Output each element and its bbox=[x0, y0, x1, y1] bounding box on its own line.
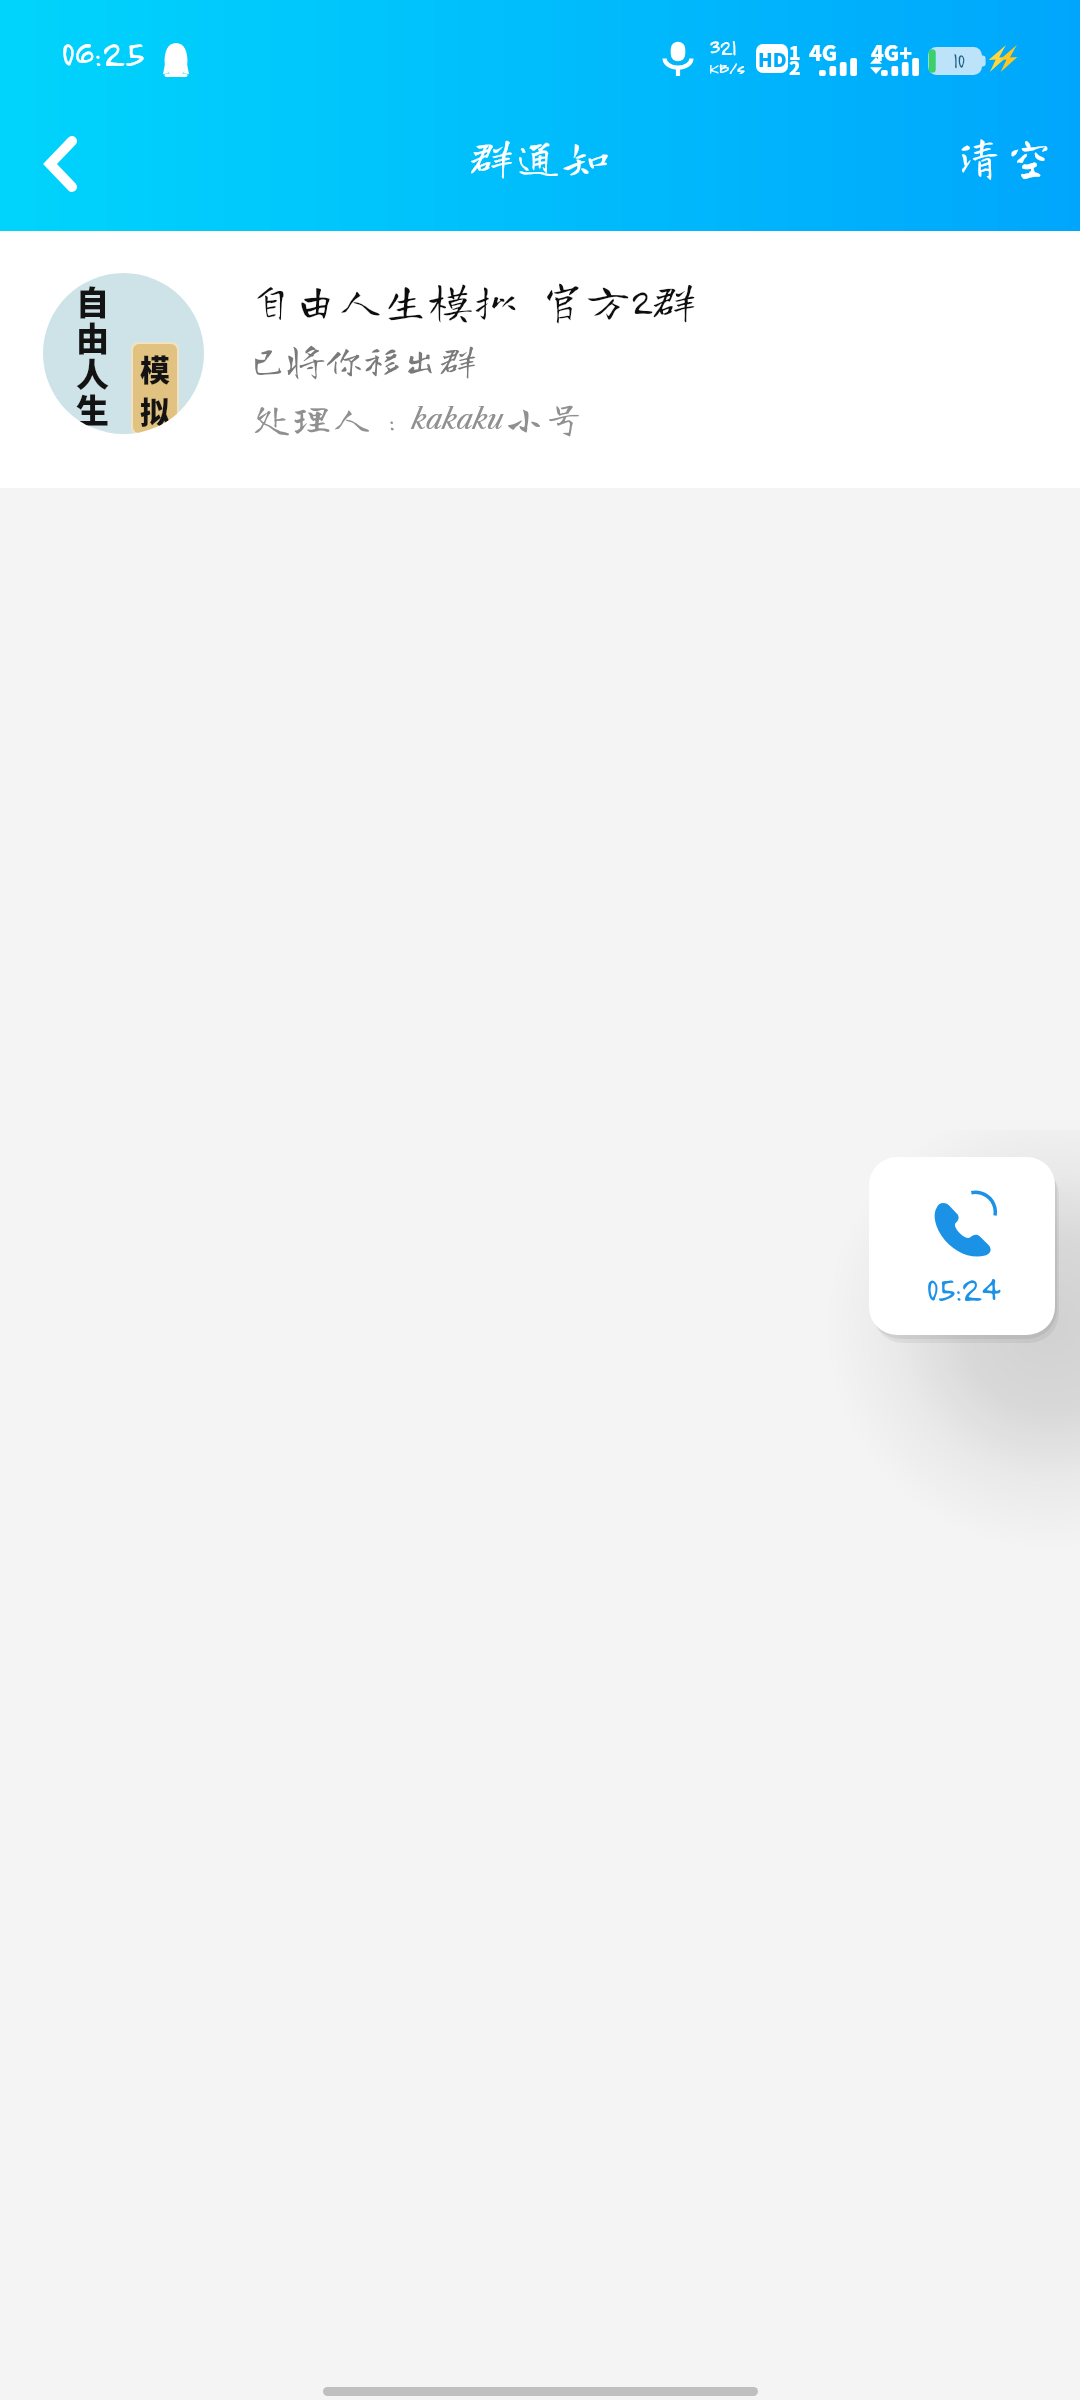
staticText: 小号 bbox=[504, 398, 584, 438]
staticText: 处理人： bbox=[252, 398, 412, 438]
staticText: kakaku bbox=[412, 402, 504, 436]
staticText: 已将你移出群 bbox=[249, 341, 478, 379]
staticText: 自由人生模拟 官方2群 bbox=[248, 277, 697, 322]
button[interactable]: Back bbox=[0, 103, 120, 224]
staticText: 群通知 bbox=[469, 133, 611, 178]
staticText: 10 bbox=[953, 47, 965, 73]
button[interactable]: 自 由 人 生 bbox=[0, 231, 1080, 488]
staticText: 2 bbox=[789, 53, 801, 81]
staticText: 05:24 bbox=[926, 1267, 999, 1309]
button[interactable]: Ongoing call bbox=[869, 1157, 1055, 1335]
staticText: 清空 bbox=[956, 133, 1056, 180]
staticText: 模 拟 bbox=[140, 346, 170, 431]
staticText: 自 由 人 生 bbox=[76, 277, 109, 432]
staticText: 321 bbox=[709, 34, 736, 60]
staticText: 1 bbox=[789, 38, 801, 66]
staticText: HD bbox=[758, 45, 787, 73]
staticText: 06:25 bbox=[61, 29, 144, 75]
staticText: 4G+ bbox=[871, 37, 912, 67]
staticText: KB/s bbox=[709, 57, 745, 78]
staticText: 4G bbox=[809, 37, 838, 67]
button[interactable]: 清空 bbox=[916, 115, 1080, 198]
